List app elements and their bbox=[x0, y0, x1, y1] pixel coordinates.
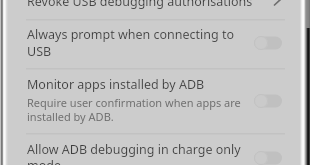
staticText: Require user confirmation when apps are bbox=[27, 95, 241, 110]
staticText: installed by ADB. bbox=[27, 109, 114, 124]
staticText: mode bbox=[27, 157, 61, 165]
staticText: USB bbox=[27, 43, 52, 60]
button[interactable]: Toggle switch, off bbox=[254, 36, 282, 50]
staticText: Monitor apps installed by ADB bbox=[27, 76, 205, 93]
other: Open bbox=[273, 0, 287, 6]
staticText: Allow ADB debugging in charge only bbox=[27, 141, 241, 158]
button[interactable]: Monitor apps installed by ADB bbox=[0, 68, 310, 133]
button[interactable]: Toggle switch, off bbox=[254, 151, 282, 165]
button[interactable]: Allow ADB debugging in charge only bbox=[0, 133, 310, 165]
button[interactable]: Toggle switch, off bbox=[254, 94, 282, 108]
staticText: Always prompt when connecting to bbox=[27, 26, 235, 43]
button[interactable]: Revoke USB debugging authorisations bbox=[0, 0, 310, 19]
staticText: Revoke USB debugging authorisations bbox=[27, 0, 253, 10]
button[interactable]: Always prompt when connecting to bbox=[0, 19, 310, 68]
